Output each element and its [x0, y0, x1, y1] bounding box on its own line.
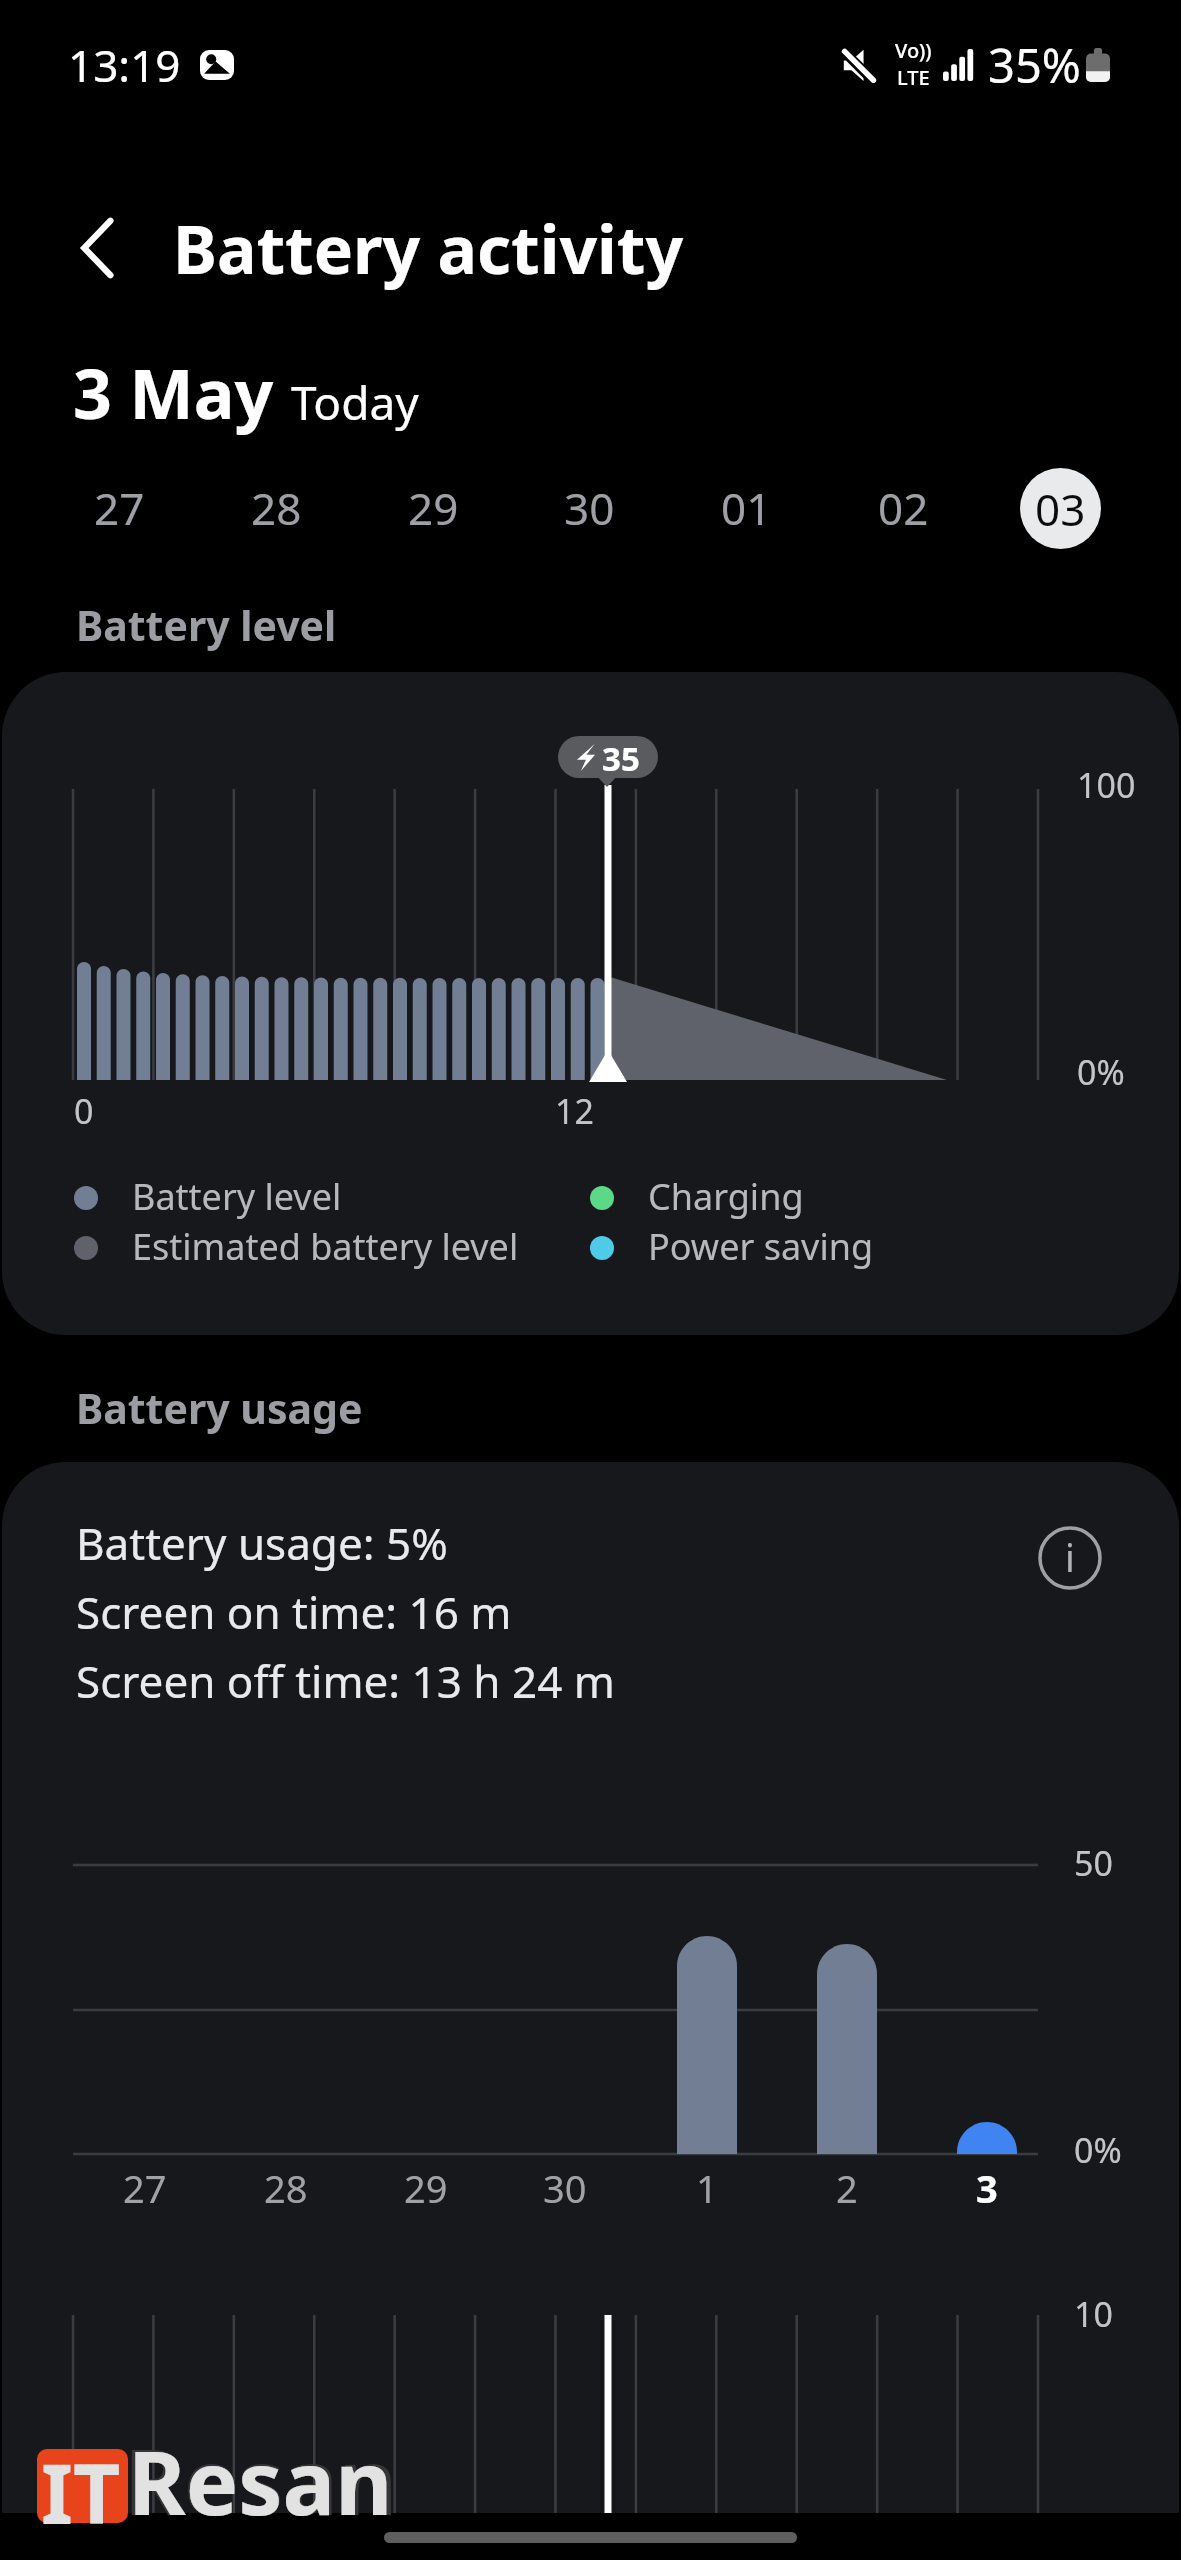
staticText: Resan [128, 2421, 393, 2541]
staticText: Battery level [132, 1172, 342, 1221]
button[interactable]: 100 [2, 672, 1179, 1335]
staticText: Screen on time: 16 m [76, 1582, 512, 1642]
staticText: Battery usage: 5% [76, 1513, 448, 1573]
staticText: 3 [976, 2162, 998, 2214]
staticText: 0 [74, 1088, 94, 1134]
button[interactable]: 27 [59, 448, 179, 568]
button[interactable]: Battery usage: 5% [2, 1462, 1179, 2513]
button[interactable]: 30 [529, 448, 649, 568]
staticText: 10 [1074, 2291, 1113, 2337]
staticText: 30 [564, 478, 615, 538]
staticText: Today [291, 371, 419, 434]
staticText: 29 [404, 2162, 448, 2214]
staticText: 28 [264, 2162, 308, 2214]
button[interactable]: Back [52, 203, 142, 293]
staticText: Vo)) [895, 37, 932, 64]
staticText: Charging [648, 1172, 804, 1221]
button[interactable]: 29 [373, 448, 493, 568]
button[interactable]: 02 [843, 448, 963, 568]
staticText: IT [41, 2436, 121, 2548]
staticText: 3 May [73, 346, 274, 439]
staticText: 28 [251, 478, 302, 538]
staticText: Resan [124, 2418, 398, 2542]
button[interactable]: 28 [216, 448, 336, 568]
staticText: 35% [988, 33, 1081, 97]
staticText: 0% [1074, 2127, 1122, 2173]
staticText: 100 [1077, 762, 1136, 808]
staticText: 50 [1074, 1840, 1113, 1886]
staticText: LTE [897, 64, 930, 91]
staticText: Battery usage [76, 1380, 363, 1436]
button[interactable]: Info [1036, 1524, 1104, 1592]
staticText: 27 [94, 478, 145, 538]
staticText: i [1065, 1531, 1075, 1583]
staticText: 35 [602, 736, 640, 778]
staticText: Battery level [76, 597, 337, 653]
staticText: 29 [408, 478, 459, 538]
button[interactable]: 01 [686, 448, 806, 568]
staticText: 01 [721, 478, 772, 538]
staticText: Screen off time: 13 h 24 m [76, 1651, 615, 1711]
staticText: 27 [123, 2162, 167, 2214]
button[interactable]: 03 [1000, 448, 1120, 568]
staticText: 13:19 [68, 35, 181, 95]
staticText: 0% [1077, 1049, 1125, 1095]
staticText: 12 [555, 1088, 594, 1134]
staticText: 1 [696, 2162, 718, 2214]
staticText: Estimated battery level [132, 1222, 519, 1271]
staticText: Power saving [648, 1222, 874, 1271]
staticText: 03 [1035, 479, 1086, 539]
staticText: 30 [543, 2162, 587, 2214]
staticText: 02 [878, 478, 929, 538]
staticText: 2 [836, 2162, 858, 2214]
staticText: Battery activity [173, 203, 684, 293]
